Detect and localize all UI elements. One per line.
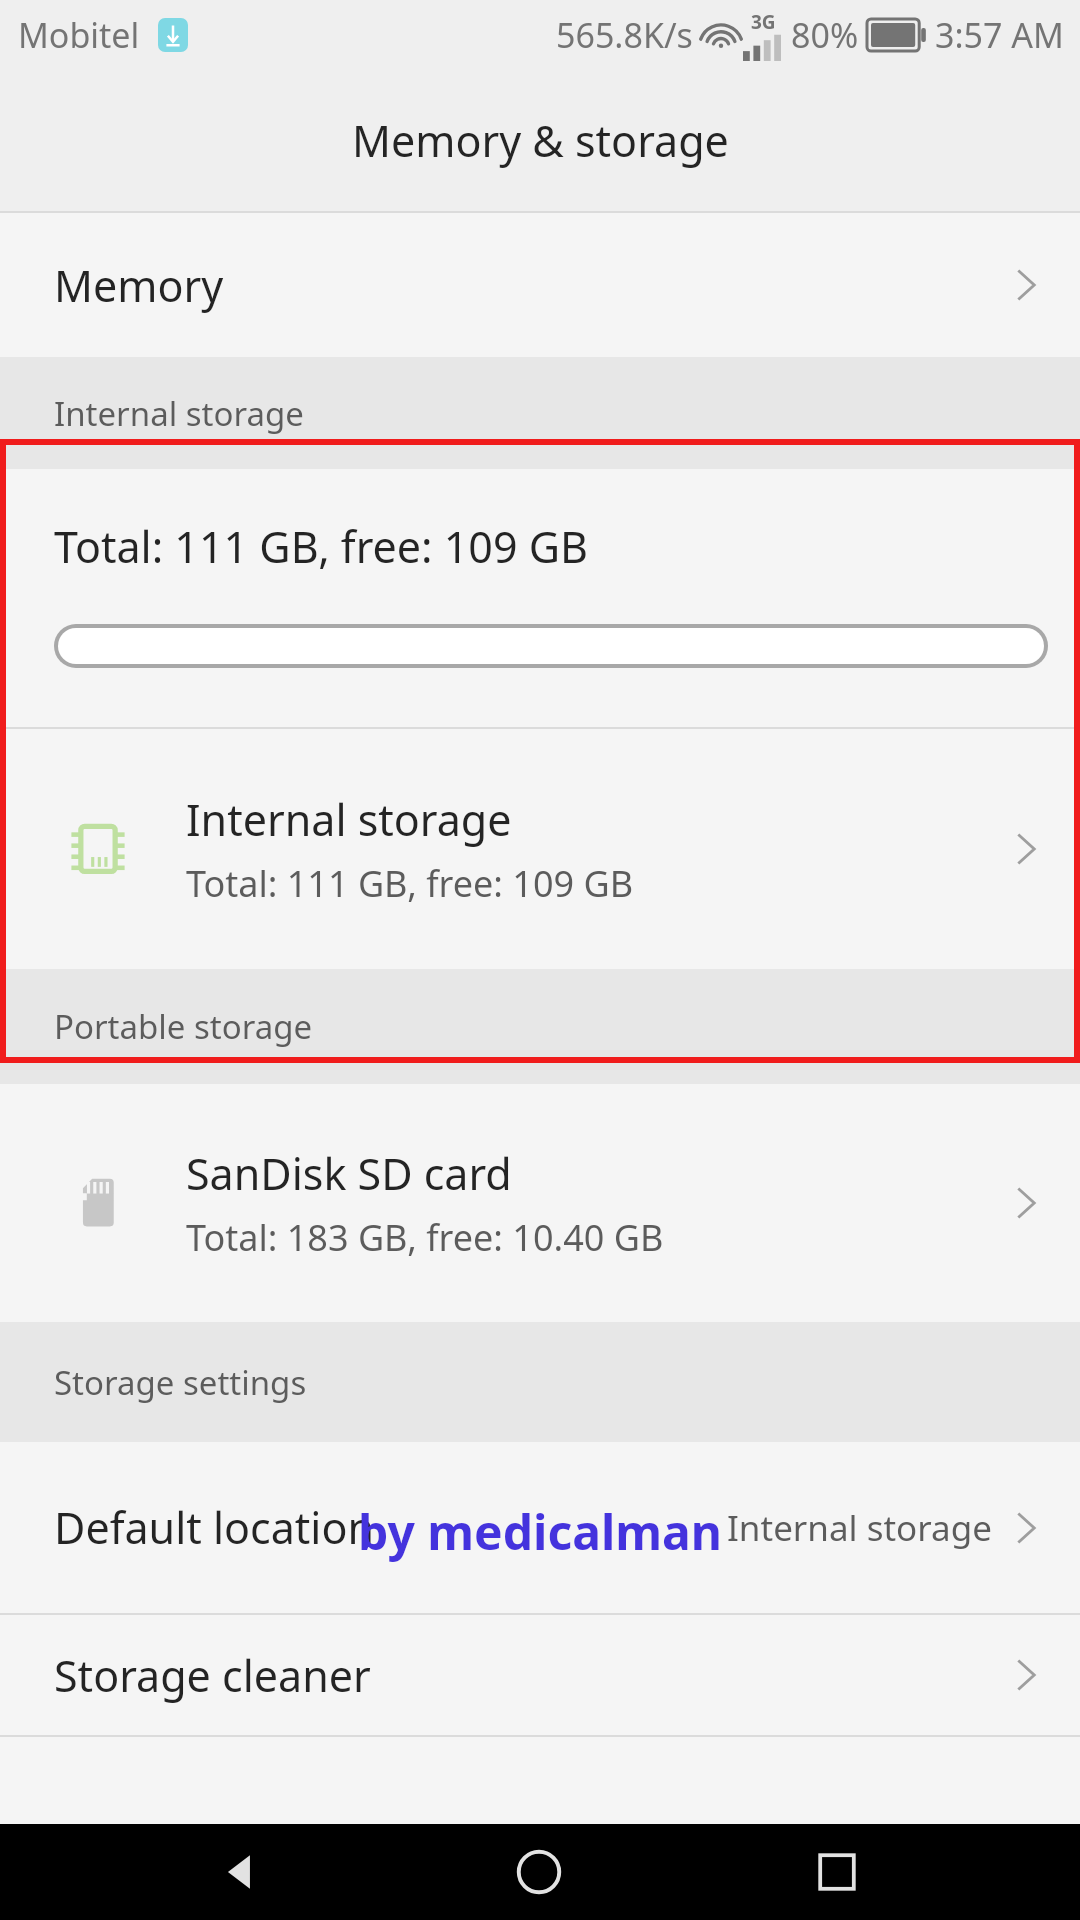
staticText: Internal storage [54,391,304,436]
staticText: 3:57 AM [935,12,1064,58]
button[interactable]: Storage cleaner [0,1615,1080,1735]
button[interactable]: Internal storage [0,729,1080,969]
staticText: by medicalman [358,1499,722,1564]
staticText: Storage settings [54,1360,307,1405]
button[interactable]: SanDisk SD card [0,1084,1080,1322]
staticText: Memory [54,256,224,315]
button[interactable]: Home [484,1824,594,1920]
staticText: 565.8K/s [556,12,693,58]
staticText: Memory & storage [352,111,729,170]
staticText: SanDisk SD card [186,1144,512,1203]
staticText: Portable storage [54,1004,313,1049]
staticText: Total: 183 GB, free: 10.40 GB [186,1213,664,1262]
staticText: Internal storage [727,1504,992,1552]
button[interactable]: Default location [0,1442,1080,1613]
staticText: Total: 111 GB, free: 109 GB [186,859,634,908]
staticText: Total: 111 GB, free: 109 GB [54,517,588,576]
staticText: Storage cleaner [54,1646,371,1705]
staticText: 3G [751,9,776,35]
staticText: 80% [791,12,859,58]
staticText: Mobitel [18,12,140,58]
button[interactable]: Memory [0,213,1080,357]
staticText: Default location [54,1498,375,1557]
button[interactable]: Recent apps [782,1824,892,1920]
button[interactable]: Back [187,1824,297,1920]
staticText: Internal storage [186,790,512,849]
